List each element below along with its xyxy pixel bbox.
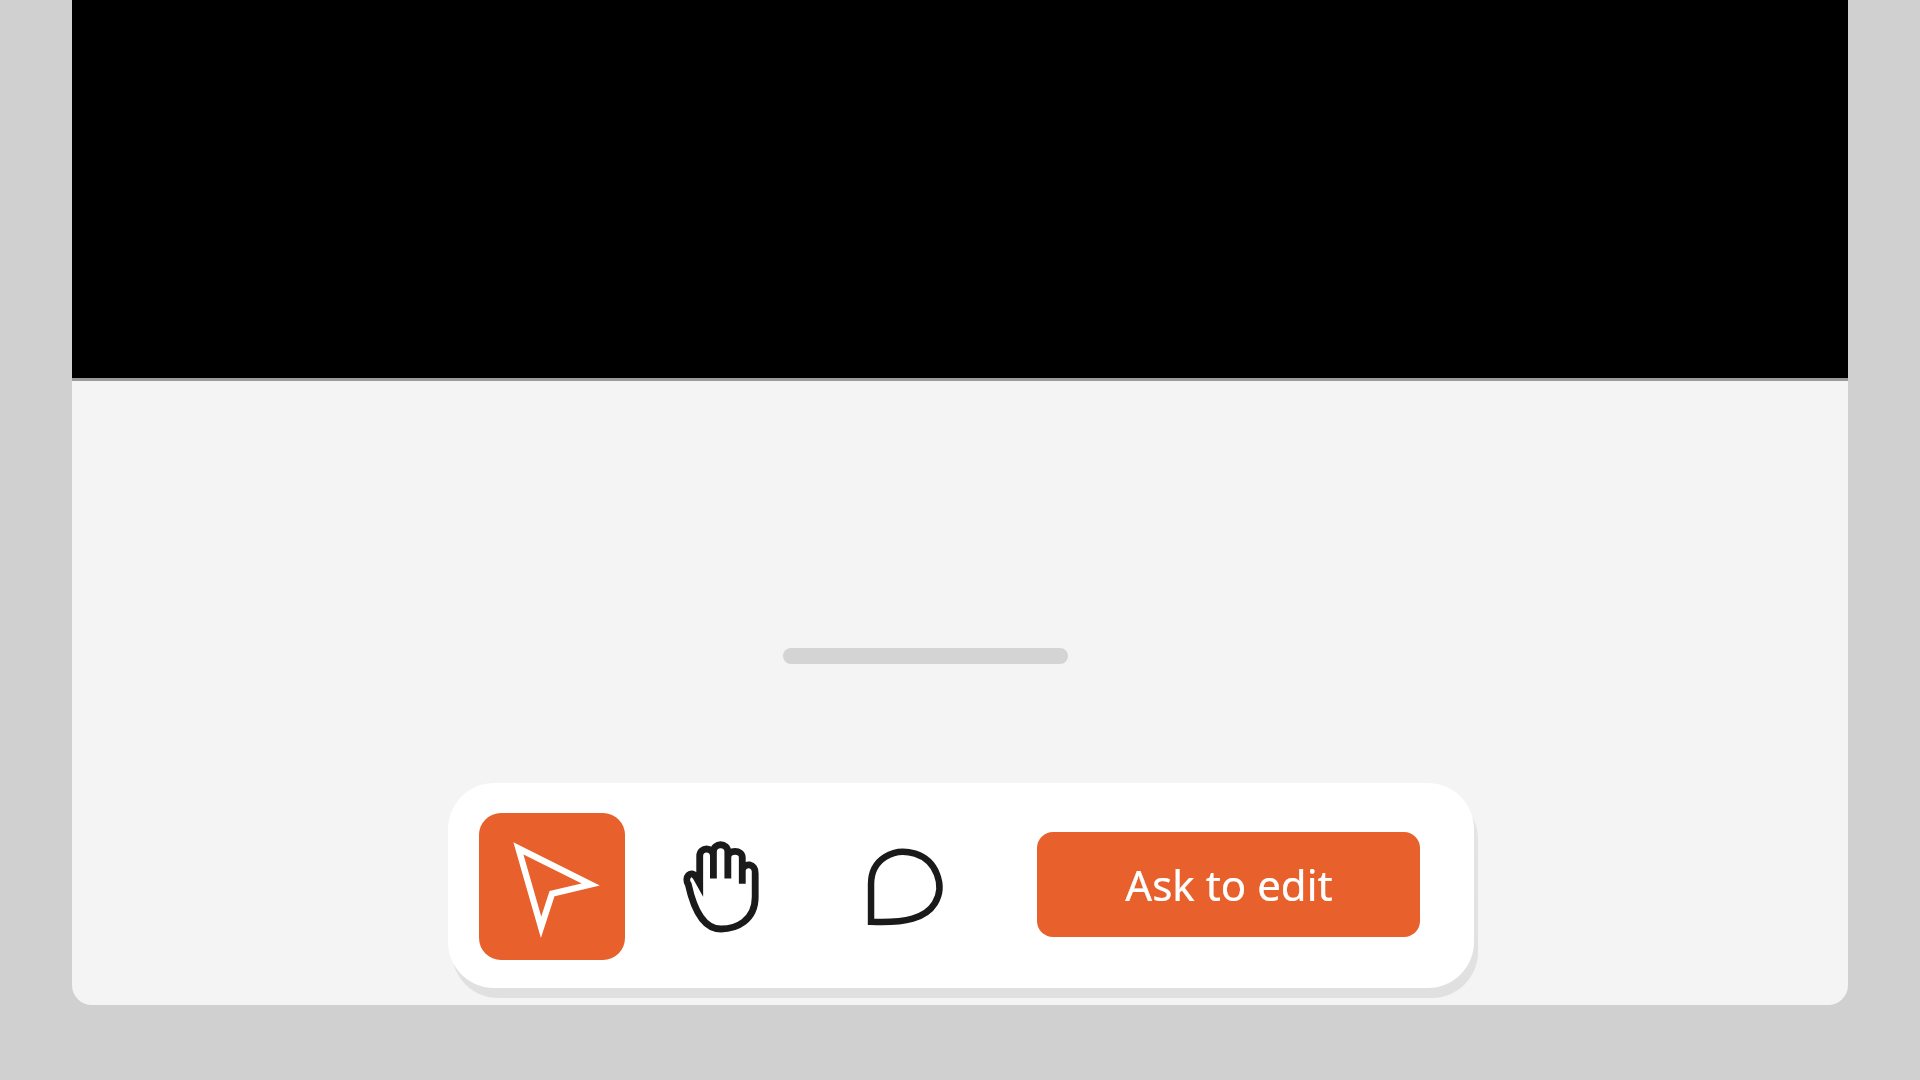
button[interactable]: Pan tool bbox=[648, 813, 794, 960]
staticText: Ask to edit bbox=[1125, 856, 1333, 913]
button[interactable]: Comment bbox=[833, 813, 979, 960]
button[interactable]: Ask to edit bbox=[1037, 832, 1420, 937]
button[interactable]: Select tool bbox=[479, 813, 625, 960]
